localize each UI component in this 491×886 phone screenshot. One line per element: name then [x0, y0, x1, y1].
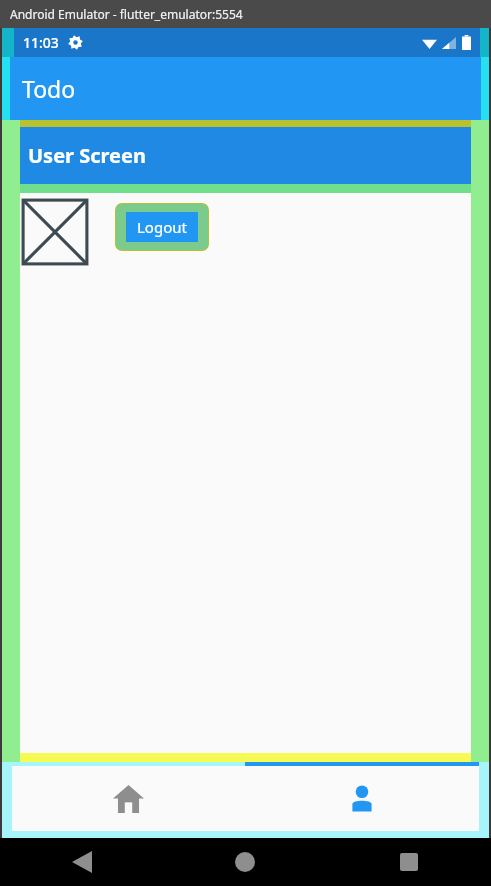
button[interactable]: Back: [0, 838, 163, 886]
staticText: Logout: [137, 217, 187, 237]
button[interactable]: Home: [163, 838, 327, 886]
staticText: 11:03: [23, 33, 59, 52]
staticText: Todo: [22, 73, 76, 104]
button[interactable]: Logout: [116, 204, 208, 250]
button[interactable]: Home: [12, 766, 245, 831]
button[interactable]: Profile: [245, 766, 479, 831]
staticText: Android Emulator - flutter_emulator:5554: [10, 6, 243, 22]
staticText: User Screen: [28, 142, 146, 169]
button[interactable]: Recents: [327, 838, 491, 886]
